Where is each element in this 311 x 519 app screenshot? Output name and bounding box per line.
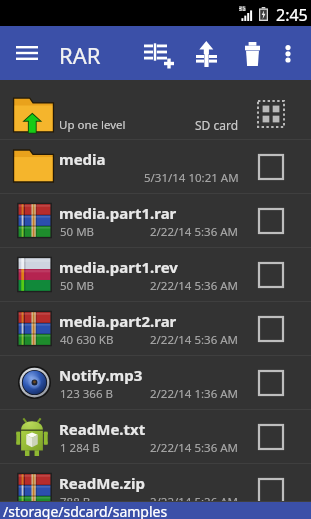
staticText: 788 B: [60, 494, 91, 510]
button[interactable]: media.part2.rar: [0, 302, 311, 356]
staticText: 2/22/14 5:26 AM: [150, 494, 239, 510]
staticText: 2/22/14 5:36 AM: [150, 332, 239, 348]
button[interactable]: media.part1.rev: [0, 248, 311, 302]
staticText: 2/22/14 5:36 AM: [150, 224, 239, 240]
staticText: 2:45: [276, 4, 308, 26]
staticText: media: [59, 149, 106, 169]
staticText: 2/22/14 5:36 AM: [150, 440, 239, 456]
button[interactable]: ReadMe.txt: [0, 410, 311, 464]
button[interactable]: media.part1.rar: [0, 194, 311, 248]
button[interactable]: More options: [276, 36, 302, 70]
button[interactable]: media: [0, 140, 311, 194]
button[interactable]: Add to archive: [138, 38, 176, 68]
button[interactable]: Up one level: [0, 80, 311, 140]
staticText: ReadMe.txt: [59, 419, 146, 439]
staticText: RAR: [59, 40, 101, 70]
staticText: 5/31/14 10:21 AM: [144, 170, 239, 186]
staticText: 1 284 B: [60, 440, 100, 456]
button[interactable]: ReadMe.zip: [0, 464, 311, 502]
button[interactable]: Extract: [190, 36, 224, 70]
staticText: 50 MB: [60, 278, 95, 294]
staticText: /storage/sdcard/samples: [3, 502, 168, 519]
staticText: ReadMe.zip: [59, 473, 145, 493]
staticText: 2/22/14 5:36 AM: [150, 278, 239, 294]
staticText: 2/22/14 1:36 AM: [150, 386, 239, 402]
button[interactable]: Delete: [238, 36, 270, 70]
staticText: 50 MB: [60, 224, 95, 240]
button[interactable]: Notify.mp3: [0, 356, 311, 410]
staticText: 123 366 B: [60, 386, 113, 402]
staticText: media.part1.rar: [59, 203, 177, 223]
staticText: Up one level: [59, 117, 126, 133]
staticText: 40 630 KB: [60, 332, 114, 348]
staticText: Notify.mp3: [59, 365, 143, 385]
staticText: SD card: [195, 117, 239, 133]
staticText: media.part1.rev: [59, 257, 178, 277]
button[interactable]: Navigation menu: [5, 36, 49, 70]
staticText: media.part2.rar: [59, 311, 177, 331]
